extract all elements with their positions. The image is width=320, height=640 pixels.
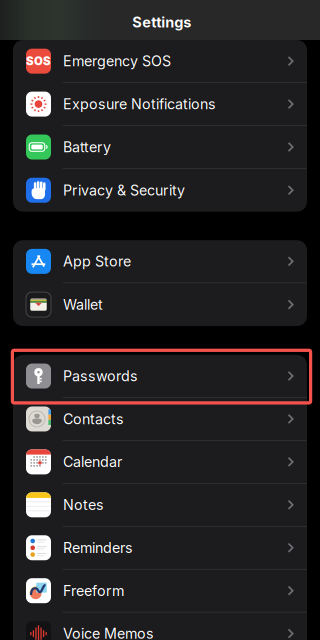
staticText: Battery	[63, 138, 111, 156]
button[interactable]: Passwords	[13, 355, 307, 398]
staticText: Settings	[132, 13, 191, 31]
button[interactable]: Freeform	[13, 569, 307, 612]
staticText: Calendar	[63, 453, 122, 471]
staticText: Contacts	[63, 410, 124, 428]
button[interactable]: SOS	[13, 40, 307, 83]
staticText: Privacy & Security	[63, 182, 185, 199]
button[interactable]: Contacts	[13, 398, 307, 441]
staticText: Freeform	[63, 582, 124, 599]
staticText: Notes	[63, 496, 104, 513]
button[interactable]: Calendar	[13, 441, 307, 484]
button[interactable]: Reminders	[13, 527, 307, 569]
staticText: Wallet	[63, 296, 103, 313]
button[interactable]: Exposure Notifications	[13, 83, 307, 126]
button[interactable]: Privacy & Security	[13, 169, 307, 212]
staticText: SOS	[26, 54, 51, 68]
button[interactable]: Battery	[13, 126, 307, 169]
staticText: App Store	[63, 253, 131, 270]
button[interactable]: Wallet	[13, 283, 307, 326]
staticText: Passwords	[63, 367, 138, 385]
staticText: Voice Memos	[63, 625, 154, 640]
staticText: Reminders	[63, 539, 133, 556]
staticText: Emergency SOS	[63, 52, 171, 70]
button[interactable]: Voice Memos	[13, 612, 307, 640]
staticText: Exposure Notifications	[63, 95, 216, 113]
button[interactable]: Notes	[13, 484, 307, 527]
button[interactable]: App Store	[13, 240, 307, 283]
